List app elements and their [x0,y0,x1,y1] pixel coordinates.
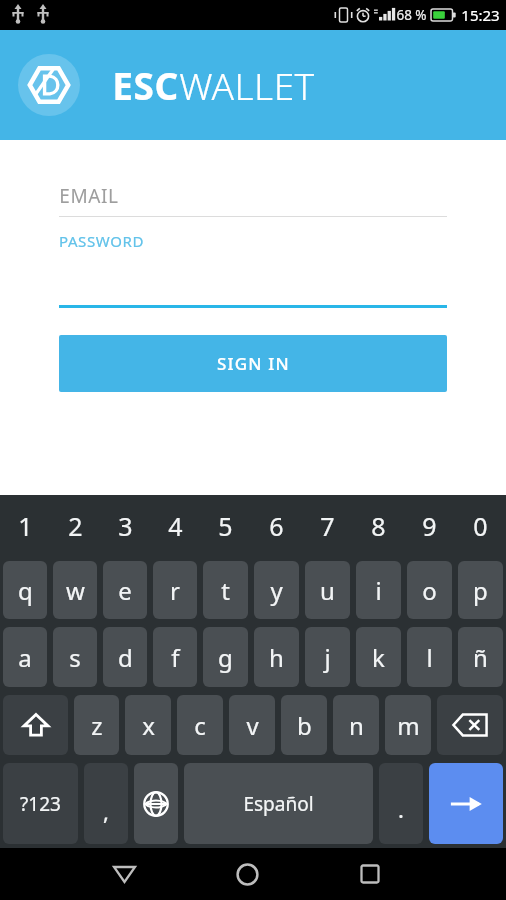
button[interactable]: Español [184,763,373,844]
button[interactable]: SIGN IN [59,335,447,392]
button[interactable]: z [74,695,119,755]
staticText: u [320,574,335,607]
button[interactable]: f [153,627,197,687]
button[interactable]: q [3,561,47,619]
button[interactable]: u [305,561,350,619]
staticText: 4 [168,509,183,543]
button[interactable]: ñ [458,627,503,687]
staticText: e [118,574,132,607]
staticText: y [270,574,283,607]
staticText: 0 [473,509,488,543]
staticText: 1 [18,509,33,543]
button[interactable]: b [281,695,327,755]
button[interactable]: Home [199,848,295,900]
button[interactable]: Recent apps [322,848,418,900]
staticText: d [118,641,133,674]
button[interactable]: g [203,627,248,687]
button[interactable]: . [379,763,423,844]
staticText: q [18,574,33,607]
staticText: w [66,574,85,607]
staticText: 3 [118,509,133,543]
button[interactable]: t [203,561,248,619]
button[interactable]: j [305,627,350,687]
staticText: m [397,709,420,742]
button[interactable]: h [254,627,299,687]
staticText: 6 [269,509,284,543]
button[interactable]: 8 [353,495,404,557]
staticText: 68 % [396,6,427,24]
staticText: v [246,709,259,742]
button[interactable]: Backspace [437,695,503,755]
button[interactable]: c [177,695,223,755]
button[interactable]: i [356,561,401,619]
button[interactable]: 4 [150,495,200,557]
staticText: h [269,641,284,674]
button[interactable]: 0 [455,495,506,557]
staticText: x [142,709,155,742]
button[interactable]: m [385,695,431,755]
button[interactable]: 2 [50,495,100,557]
staticText: l [426,641,433,674]
staticText: ?123 [20,791,61,817]
button[interactable]: 5 [200,495,251,557]
button[interactable]: 1 [0,495,50,557]
button[interactable]: 9 [404,495,455,557]
staticText: SIGN IN [217,352,290,375]
button[interactable]: l [407,627,452,687]
staticText: n [349,709,364,742]
staticText: i [375,574,382,607]
button[interactable]: s [53,627,97,687]
staticText: f [171,641,180,674]
button[interactable]: 6 [251,495,302,557]
button[interactable]: w [53,561,97,619]
button[interactable]: PASSWORD [59,231,447,308]
button[interactable]: Shift [3,695,68,755]
button[interactable]: x [125,695,171,755]
button[interactable]: a [3,627,47,687]
button[interactable]: EMAIL [59,176,447,217]
button[interactable]: d [103,627,147,687]
button[interactable]: o [407,561,452,619]
staticText: , [103,796,109,826]
button[interactable]: k [356,627,401,687]
staticText: 2 [68,509,83,543]
button[interactable]: r [153,561,197,619]
staticText: c [194,709,206,742]
button[interactable]: 3 [100,495,150,557]
staticText: k [372,641,385,674]
staticText: p [473,574,488,607]
staticText: 5 [218,509,233,543]
staticText: Español [243,791,314,817]
button[interactable]: n [333,695,379,755]
button[interactable]: ?123 [3,763,78,844]
staticText: j [324,641,331,674]
staticText: EMAIL [59,183,119,209]
staticText: a [18,641,32,674]
staticText: 8 [371,509,386,543]
staticText: g [218,641,233,674]
staticText: o [422,574,437,607]
button[interactable]: y [254,561,299,619]
button[interactable]: Enter [429,763,503,844]
staticText: 7 [320,509,335,543]
staticText: PASSWORD [59,231,144,251]
staticText: WALLET [179,60,315,110]
button[interactable]: v [229,695,275,755]
staticText: t [221,574,230,607]
button[interactable]: 7 [302,495,353,557]
staticText: z [91,709,103,742]
staticText: b [297,709,312,742]
button[interactable]: p [458,561,503,619]
button[interactable]: e [103,561,147,619]
staticText: r [170,574,180,607]
button[interactable]: , [84,763,128,844]
staticText: . [398,794,404,824]
staticText: ESC [112,60,179,110]
staticText: ñ [473,641,488,674]
button[interactable]: Change language [134,763,178,844]
staticText: 9 [422,509,437,543]
staticText: s [69,641,81,674]
button[interactable]: Back [76,848,172,900]
staticText: 15:23 [461,5,500,25]
